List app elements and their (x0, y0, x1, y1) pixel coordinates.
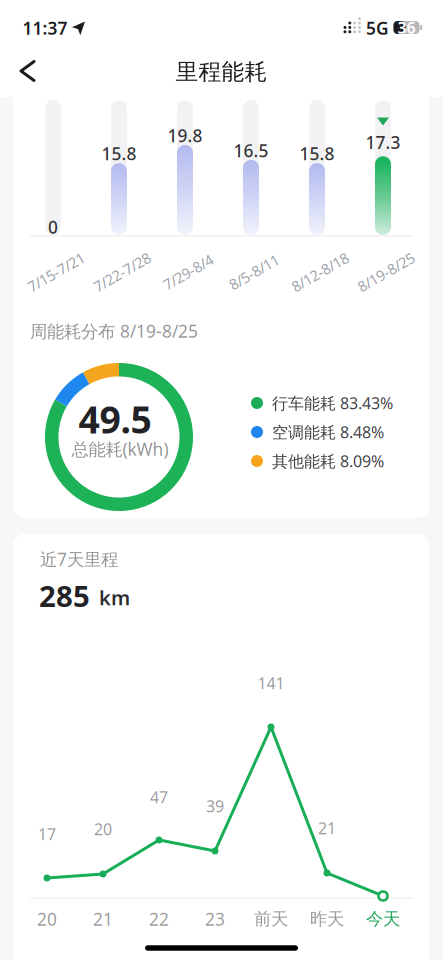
staticText: 近7天里程 (40, 547, 118, 570)
staticText: 今天 (366, 908, 400, 930)
staticText: 空调能耗 8.48% (272, 421, 384, 443)
staticText: 0 (48, 215, 58, 238)
staticText: 行车能耗 83.43% (272, 392, 393, 414)
staticText: 总能耗(kWh) (71, 437, 168, 460)
button[interactable] (5, 53, 49, 89)
staticText: 22 (149, 907, 169, 930)
staticText: 昨天 (310, 908, 344, 930)
staticText: 17 (38, 823, 56, 845)
staticText: 15.8 (299, 142, 334, 165)
staticText: 8/12-8/18 (288, 262, 351, 282)
staticText: 其他能耗 8.09% (272, 450, 384, 472)
staticText: 21 (93, 907, 113, 930)
staticText: 7/22-7/28 (90, 262, 153, 282)
staticText: 141 (257, 672, 284, 694)
staticText: 17.3 (365, 131, 400, 154)
staticText: 20 (94, 818, 112, 840)
staticText: 11:37 (22, 16, 67, 39)
staticText: 20 (37, 907, 57, 930)
staticText: 7/29-8/4 (160, 262, 215, 282)
staticText: 周能耗分布 8/19-8/25 (30, 319, 198, 342)
staticText: 16.5 (233, 139, 268, 162)
staticText: 39 (206, 795, 224, 817)
staticText: 36 (397, 17, 415, 38)
staticText: 15.8 (101, 142, 136, 165)
staticText: 里程能耗 (175, 58, 267, 86)
staticText: 19.8 (167, 124, 202, 147)
staticText: 285 (39, 576, 90, 615)
staticText: 23 (205, 907, 225, 930)
staticText: 5G (366, 16, 389, 39)
staticText: 8/5-8/11 (226, 262, 281, 282)
staticText: 47 (150, 786, 168, 808)
staticText: 7/15-7/21 (24, 262, 87, 282)
staticText: 前天 (254, 908, 288, 930)
staticText: km (99, 584, 130, 611)
staticText: 21 (318, 817, 336, 839)
staticText: 8/19-8/25 (354, 262, 417, 282)
staticText: 49.5 (78, 394, 151, 444)
